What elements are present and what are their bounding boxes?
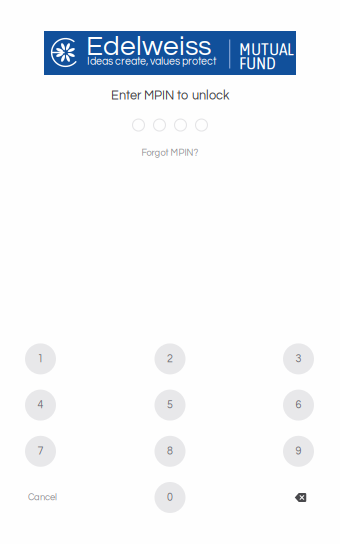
staticText: 4 bbox=[37, 400, 43, 411]
button[interactable]: 0 bbox=[154, 482, 185, 513]
button[interactable]: 5 bbox=[154, 390, 185, 421]
button[interactable]: Delete bbox=[283, 482, 314, 513]
button[interactable]: 2 bbox=[154, 343, 185, 374]
staticText: 3 bbox=[295, 353, 301, 364]
staticText: Ideas create, values protect bbox=[87, 56, 216, 67]
staticText: 9 bbox=[295, 446, 301, 457]
staticText: 2 bbox=[167, 353, 173, 364]
button[interactable]: 4 bbox=[25, 390, 56, 421]
staticText: 1 bbox=[37, 353, 43, 364]
button[interactable]: 9 bbox=[283, 436, 314, 467]
staticText: 7 bbox=[37, 446, 43, 457]
staticText: Cancel bbox=[28, 493, 57, 502]
staticText: 8 bbox=[167, 446, 173, 457]
staticText: MUTUAL bbox=[239, 39, 294, 59]
staticText: 0 bbox=[167, 492, 173, 503]
staticText: Edelweiss bbox=[86, 32, 211, 61]
staticText: Forgot MPIN? bbox=[141, 148, 198, 158]
staticText: 6 bbox=[295, 400, 301, 411]
button[interactable]: Cancel bbox=[20, 482, 61, 513]
staticText: 5 bbox=[167, 400, 173, 411]
button[interactable]: Forgot MPIN? bbox=[135, 131, 204, 162]
button[interactable]: 3 bbox=[283, 343, 314, 374]
button[interactable]: 7 bbox=[25, 436, 56, 467]
button[interactable]: 6 bbox=[283, 390, 314, 421]
button[interactable]: 8 bbox=[154, 436, 185, 467]
staticText: Enter MPIN to unlock bbox=[111, 89, 229, 102]
staticText: FUND bbox=[239, 53, 276, 73]
button[interactable]: 1 bbox=[25, 343, 56, 374]
